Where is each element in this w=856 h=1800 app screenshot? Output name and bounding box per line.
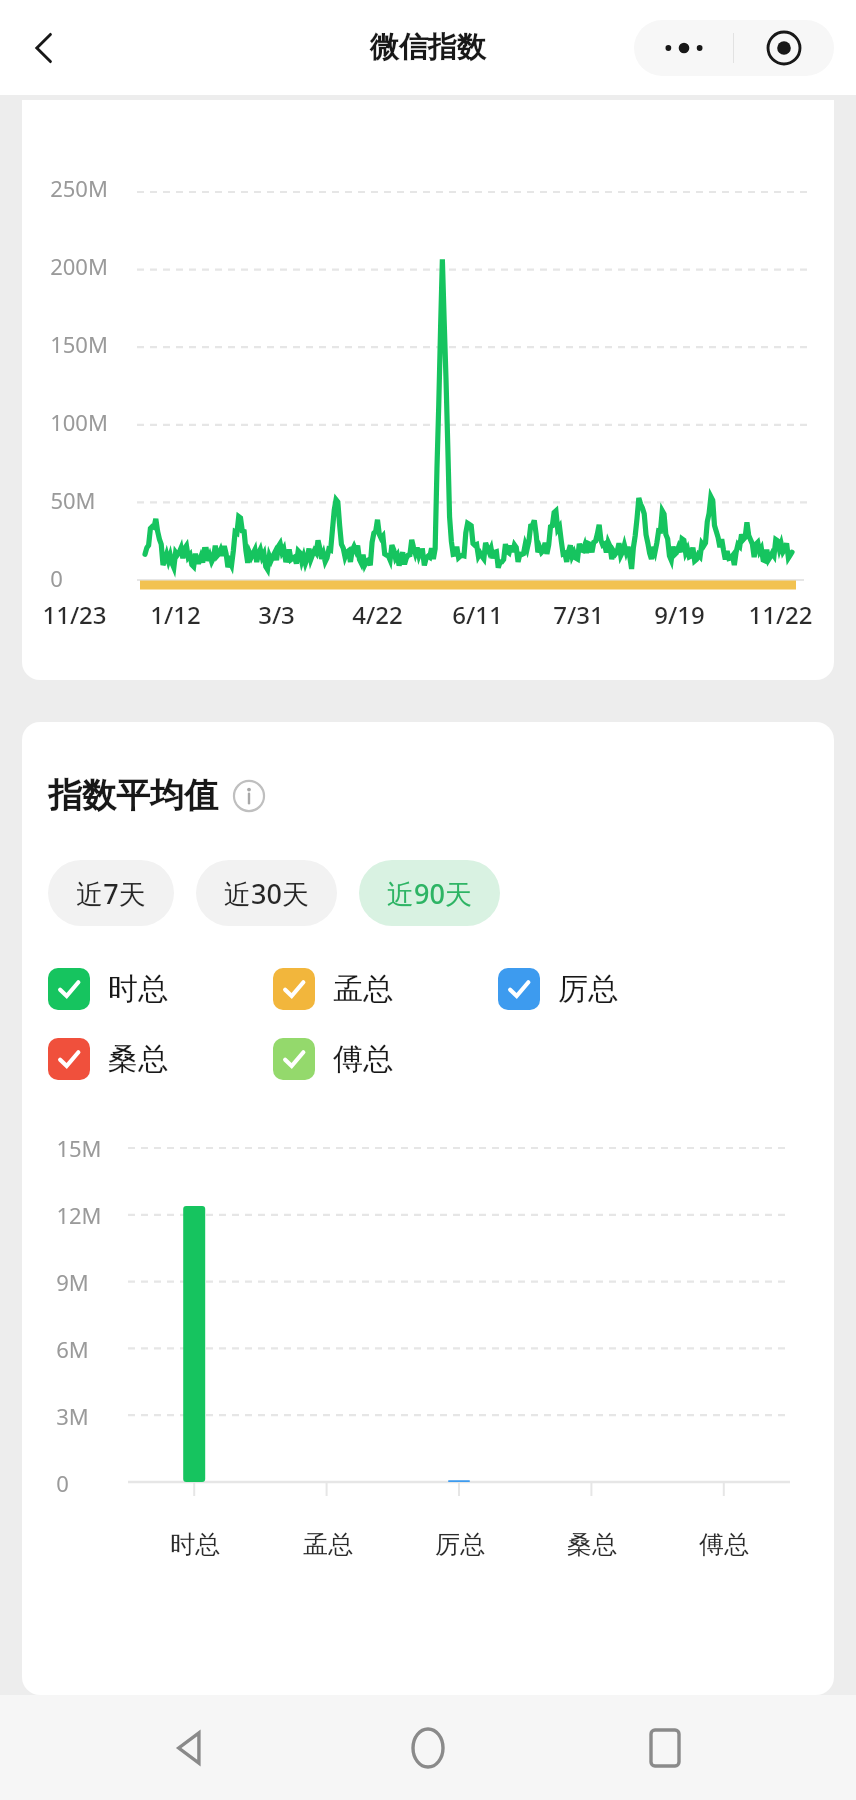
staticText: 厉总 xyxy=(558,970,618,1008)
staticText: 12M xyxy=(56,1200,102,1230)
staticText: 1/12 xyxy=(150,598,201,631)
staticText: 微信指数 xyxy=(370,29,486,66)
staticText: 桑总 xyxy=(567,1529,617,1560)
staticText: 厉总 xyxy=(435,1529,485,1560)
button[interactable]: 厉总 xyxy=(498,968,618,1010)
button[interactable]: 近90天 xyxy=(359,860,500,926)
staticText: 6M xyxy=(56,1334,89,1364)
staticText: 4/22 xyxy=(352,598,403,631)
button[interactable]: Info xyxy=(232,779,266,813)
staticText: 11/23 xyxy=(42,598,107,631)
staticText: 150M xyxy=(50,329,108,359)
button[interactable]: 桑总 xyxy=(48,1038,168,1080)
staticText: 时总 xyxy=(170,1529,220,1560)
staticText: 11/22 xyxy=(748,598,813,631)
button[interactable]: 时总 xyxy=(48,968,168,1010)
staticText: 3/3 xyxy=(258,598,295,631)
staticText: 7/31 xyxy=(553,598,604,631)
staticText: 孟总 xyxy=(333,970,393,1008)
staticText: 0 xyxy=(56,1468,69,1498)
button[interactable]: 孟总 xyxy=(273,968,393,1010)
button[interactable]: Back xyxy=(14,17,76,79)
staticText: 傅总 xyxy=(699,1529,749,1560)
button[interactable]: More options xyxy=(634,20,733,76)
staticText: 100M xyxy=(50,407,108,437)
staticText: 时总 xyxy=(108,970,168,1008)
staticText: 桑总 xyxy=(108,1040,168,1078)
button[interactable]: Back xyxy=(145,1702,237,1794)
staticText: 200M xyxy=(50,251,108,281)
staticText: 近90天 xyxy=(387,875,472,912)
button[interactable]: Recents xyxy=(619,1702,711,1794)
staticText: 50M xyxy=(50,485,96,515)
staticText: 3M xyxy=(56,1401,89,1431)
button[interactable]: 近7天 xyxy=(48,860,174,926)
staticText: 15M xyxy=(56,1133,102,1163)
staticText: 9M xyxy=(56,1267,89,1297)
staticText: 6/11 xyxy=(452,598,503,631)
staticText: 0 xyxy=(50,563,63,593)
staticText: 近7天 xyxy=(76,875,146,912)
button[interactable]: 近30天 xyxy=(196,860,337,926)
button[interactable]: Home xyxy=(382,1702,474,1794)
staticText: 傅总 xyxy=(333,1040,393,1078)
staticText: 250M xyxy=(50,173,108,203)
staticText: 9/19 xyxy=(654,598,705,631)
button[interactable]: 傅总 xyxy=(273,1038,393,1080)
staticText: 指数平均值 xyxy=(48,774,218,817)
button[interactable]: Close xyxy=(734,20,834,76)
staticText: 孟总 xyxy=(303,1529,353,1560)
staticText: 近30天 xyxy=(224,875,309,912)
